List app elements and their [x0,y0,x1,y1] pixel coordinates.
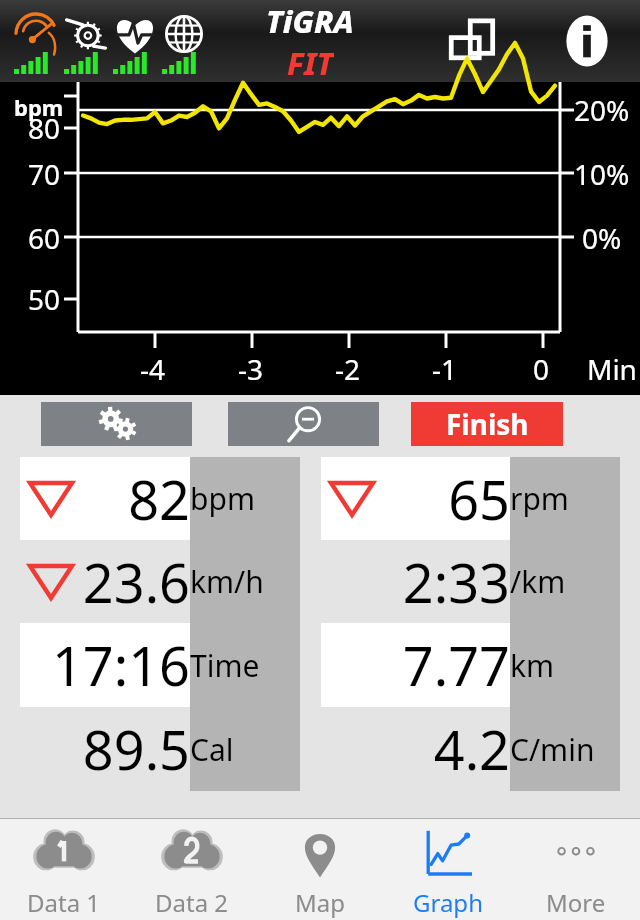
staticText: -4 [140,350,166,388]
button[interactable]: 2:33 [321,540,620,623]
staticText: -1 [432,350,458,388]
staticText: -2 [335,350,361,388]
staticText: TiGRA [266,0,354,42]
staticText: rpm [510,478,569,519]
staticText: bpm [190,478,255,519]
button[interactable]: 82 [20,457,300,540]
staticText: km/h [190,561,264,602]
staticText: /km [510,561,566,602]
staticText: 17:16 [51,628,190,702]
button[interactable]: Map [256,819,384,920]
button[interactable]: 17:16 [20,623,300,707]
staticText: FIT [287,42,334,82]
staticText: 80 [28,109,61,147]
staticText: Data 1 [27,886,101,919]
button[interactable]: Zoom out [228,402,379,446]
staticText: 20% [574,91,630,129]
staticText: bpm [14,92,64,122]
staticText: 82 [128,462,190,536]
staticText: 7.77 [402,628,510,702]
staticText: Graph [413,886,483,919]
button[interactable]: More [512,819,640,920]
button[interactable]: 65 [321,457,620,540]
button[interactable]: Switch screen [449,13,505,69]
button[interactable]: Finish [411,402,563,446]
staticText: km [510,645,555,686]
staticText: Data 2 [155,886,229,919]
staticText: 60 [28,219,61,257]
staticText: 4.2 [433,712,510,786]
staticText: C/min [510,729,595,770]
staticText: Cal [190,729,234,770]
staticText: 0 [533,350,550,388]
button[interactable]: Settings [41,402,192,446]
button[interactable]: Graph [384,819,512,920]
staticText: 10% [574,155,630,193]
button[interactable]: 7.77 [321,623,620,707]
staticText: Min [587,350,637,388]
staticText: 23.6 [82,545,190,619]
staticText: More [546,886,606,919]
staticText: Time [190,645,260,686]
staticText: 0% [582,219,622,257]
staticText: -3 [238,350,264,388]
button[interactable]: Data 2 [128,819,256,920]
button[interactable]: 23.6 [20,540,300,623]
button[interactable]: 4.2 [321,707,620,791]
button[interactable]: Info [557,11,617,71]
staticText: Map [295,886,345,919]
staticText: 70 [28,155,61,193]
staticText: 89.5 [82,712,190,786]
button[interactable]: 89.5 [20,707,300,791]
staticText: 2:33 [402,545,510,619]
staticText: Finish [446,405,529,443]
staticText: 65 [448,462,510,536]
button[interactable]: Data 1 [0,819,128,920]
staticText: 50 [28,280,61,318]
